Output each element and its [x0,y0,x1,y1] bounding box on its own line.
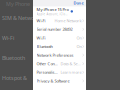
staticText: Wi-Fi [36,18,45,23]
staticText: Learn more [60,70,81,75]
button[interactable]: Done [71,0,86,6]
button[interactable]: Wi-Fi [33,16,86,25]
staticText: Bluetooth [36,44,52,49]
staticText: Data & Security [60,61,81,66]
staticText: Done [73,0,83,6]
staticText: Hotspot & [2,74,28,82]
staticText: My Phone [6,0,30,8]
staticText: Wi-Fi [36,35,45,40]
button[interactable]: Privacy & Software [33,77,86,85]
button[interactable]: Wi-Fi [0,28,40,48]
staticText: Other Connections [36,61,57,66]
staticText: Bluetooth [2,54,25,62]
button[interactable]: SIM & Network [0,8,40,28]
staticText: Wi-Fi [2,34,14,42]
button[interactable]: Serial number 28492 [33,25,86,34]
staticText: Personalisation [36,70,57,75]
button[interactable]: Bluetooth [0,48,40,68]
staticText: On [76,35,81,40]
staticText: My iPhone 15 Pro [36,7,68,12]
button[interactable]: My Phone [0,0,40,8]
staticText: Home Network [54,18,81,23]
staticText: Serial number 28492 [36,27,72,32]
staticText: SIM & Network [2,14,39,22]
staticText: Apple Account, iCloud [36,12,69,16]
button[interactable]: Bluetooth [33,42,86,51]
button[interactable]: Wi-Fi [33,34,86,42]
staticText: Network Preferences [36,52,73,58]
button[interactable]: Other Connections [33,59,86,68]
staticText: On [76,44,81,49]
button[interactable]: Network Preferences [33,51,86,59]
button[interactable]: Personalisation [33,68,86,77]
button[interactable]: Hotspot & [0,68,40,88]
staticText: Privacy & Software [36,78,69,83]
